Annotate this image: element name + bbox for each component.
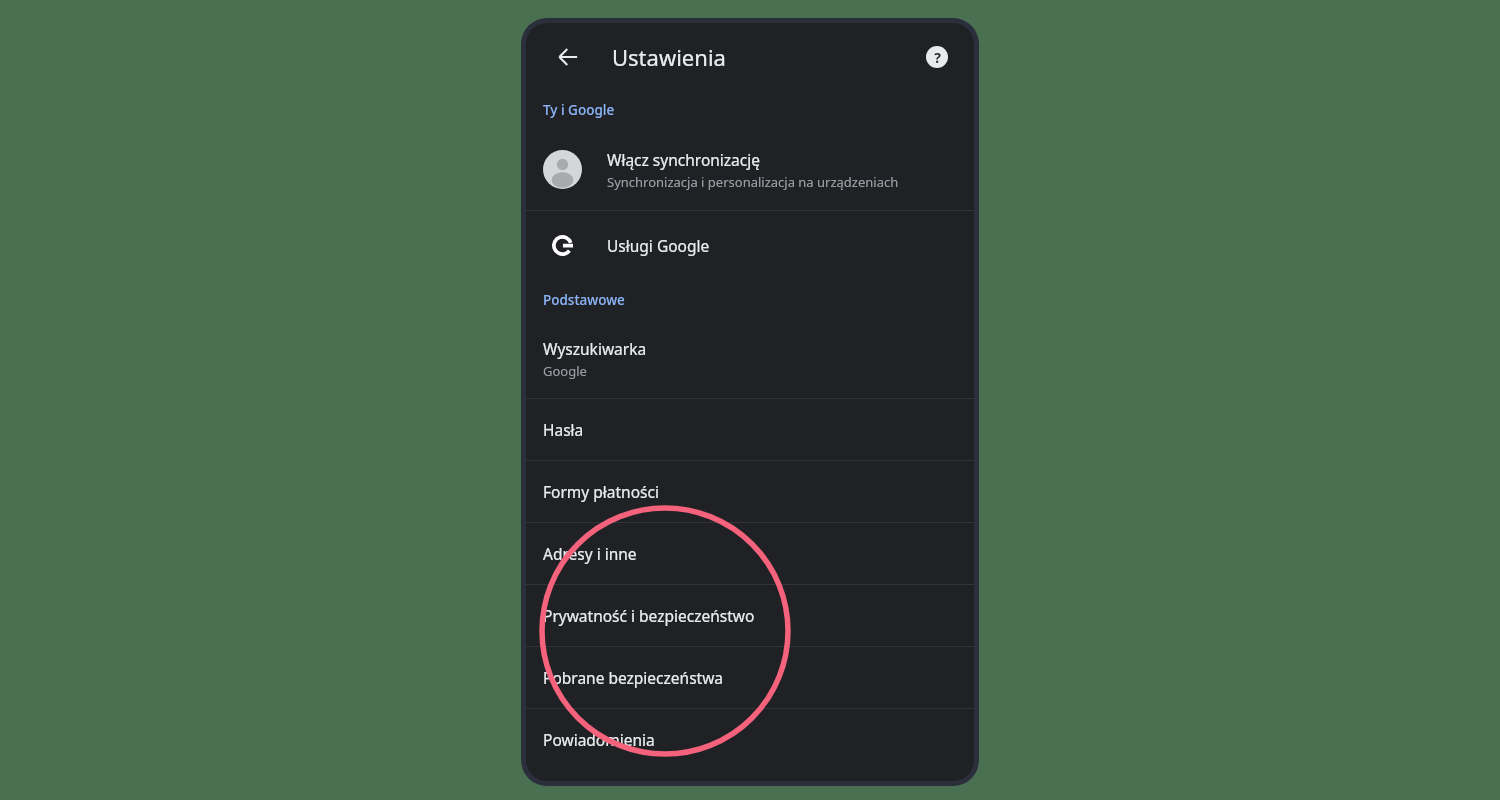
staticText: Synchronizacja i personalizacja na urząd… bbox=[607, 173, 899, 191]
staticText: Włącz synchronizację bbox=[607, 149, 761, 170]
staticText: Adresy i inne bbox=[543, 543, 637, 564]
button[interactable]: Usługi Google bbox=[526, 211, 974, 280]
button[interactable]: Pomoc bbox=[916, 36, 958, 78]
staticText: Prywatność i bezpieczeństwo bbox=[543, 605, 755, 626]
staticText: ? bbox=[934, 48, 941, 67]
staticText: Formy płatności bbox=[543, 481, 659, 502]
staticText: Ty i Google bbox=[543, 101, 615, 119]
button[interactable]: Formy płatności bbox=[526, 461, 974, 522]
staticText: Google bbox=[543, 362, 587, 380]
staticText: Usługi Google bbox=[607, 235, 710, 256]
staticText: Hasła bbox=[543, 419, 584, 440]
staticText: Powiadomienia bbox=[543, 729, 655, 750]
button[interactable]: Prywatność i bezpieczeństwo bbox=[526, 585, 974, 646]
button[interactable]: Adresy i inne bbox=[526, 523, 974, 584]
button[interactable]: Powiadomienia bbox=[526, 709, 974, 770]
staticText: Podstawowe bbox=[543, 291, 625, 309]
button[interactable]: Wstecz bbox=[546, 35, 590, 79]
button[interactable]: Wyszukiwarka bbox=[526, 319, 974, 398]
button[interactable]: Włącz synchronizację bbox=[526, 129, 974, 210]
staticText: Wyszukiwarka bbox=[543, 338, 647, 359]
staticText: Pobrane bezpieczeństwa bbox=[543, 667, 724, 688]
staticText: Ustawienia bbox=[612, 42, 726, 72]
button[interactable]: Hasła bbox=[526, 399, 974, 460]
button[interactable]: Pobrane bezpieczeństwa bbox=[526, 647, 974, 708]
